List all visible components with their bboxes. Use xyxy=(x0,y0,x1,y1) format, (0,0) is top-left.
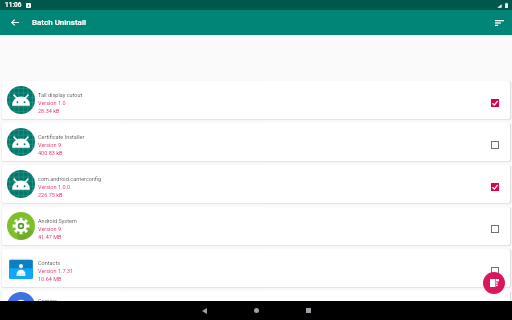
button[interactable]: Android System Version 9 41.47 MB xyxy=(2,207,510,245)
button[interactable]: Camera Version 2.0 22.10 MB xyxy=(2,291,510,320)
staticText: Batch Uninstall xyxy=(32,18,86,27)
button[interactable]: Contacts Version 1.7.31 10.64 MB xyxy=(2,249,510,287)
button[interactable]: Select Contacts xyxy=(488,264,501,277)
staticText: Contacts Version 1.7.31 10.64 MB xyxy=(38,260,74,282)
button[interactable]: Select Tall display cutout xyxy=(488,96,501,109)
button[interactable]: Select Android System xyxy=(488,222,501,235)
staticText: 11:06 xyxy=(5,1,22,9)
button[interactable]: Tall display cutout Version 1.0 28.34 kB xyxy=(2,81,510,119)
button[interactable]: com.android.carrierconfig Version 1.0.0 … xyxy=(2,165,510,203)
staticText: Tall display cutout Version 1.0 28.34 kB xyxy=(38,92,83,114)
button[interactable]: Recent apps xyxy=(282,301,334,320)
button[interactable]: Select com.android.carrierconfig xyxy=(488,180,501,193)
staticText: Android System Version 9 41.47 MB xyxy=(38,218,77,240)
button[interactable]: Sort xyxy=(491,14,508,31)
button[interactable]: Uninstall selected apps xyxy=(483,272,505,294)
button[interactable]: Navigate up xyxy=(6,14,23,31)
button[interactable]: Certificate Installer Version 9 400.83 k… xyxy=(2,123,510,161)
staticText: Camera Version 2.0 22.10 MB xyxy=(38,298,66,320)
staticText: com.android.carrierconfig Version 1.0.0 … xyxy=(38,176,102,198)
button[interactable]: Home xyxy=(230,301,282,320)
button[interactable]: Select Certificate Installer xyxy=(488,138,501,151)
button[interactable]: Back xyxy=(178,301,230,320)
staticText: Certificate Installer Version 9 400.83 k… xyxy=(38,134,85,156)
